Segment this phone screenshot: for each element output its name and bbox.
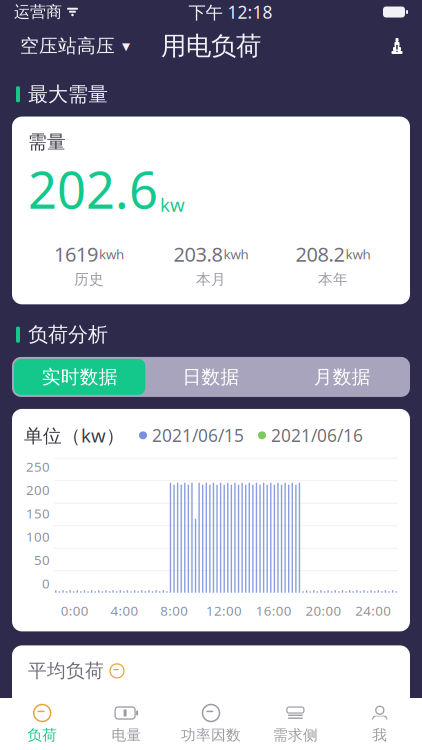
staticText: kw: [117, 721, 142, 746]
staticText: 需求侧: [273, 726, 318, 744]
staticText: ▾: [122, 37, 130, 55]
staticText: 电量: [112, 726, 142, 744]
staticText: 2021/06/15: [152, 424, 244, 447]
staticText: kwh: [223, 245, 248, 263]
staticText: 历史: [74, 270, 104, 288]
staticText: kwh: [99, 245, 124, 263]
staticText: 最大需量: [28, 82, 108, 107]
staticText: 150: [26, 504, 50, 522]
button[interactable]: 电量: [84, 698, 169, 750]
staticText: 1619: [54, 241, 98, 267]
staticText: 24:00: [355, 602, 391, 619]
staticText: 月数据: [314, 365, 371, 388]
staticText: kw: [160, 192, 185, 217]
staticText: 用电负荷: [161, 30, 261, 61]
staticText: 800: [28, 684, 115, 750]
staticText: 本月: [196, 270, 226, 288]
staticText: 我: [372, 726, 387, 744]
staticText: 12:00: [206, 602, 242, 619]
button[interactable]: 空压站高压: [16, 28, 134, 63]
staticText: 负荷分析: [28, 322, 108, 347]
staticText: 16:00: [256, 602, 292, 619]
staticText: 50: [34, 551, 50, 569]
staticText: 203.8: [173, 241, 222, 267]
button[interactable]: 我: [338, 698, 422, 750]
staticText: 实时数据: [42, 365, 118, 388]
button[interactable]: 实时数据: [14, 359, 145, 395]
staticText: 负荷: [27, 726, 57, 744]
button[interactable]: 功率因数: [169, 698, 253, 750]
staticText: 202.6: [28, 155, 158, 223]
staticText: 功率因数: [181, 726, 241, 744]
staticText: 0:00: [61, 602, 89, 619]
staticText: kwh: [345, 245, 370, 263]
staticText: 0: [42, 574, 50, 592]
button[interactable]: 告警: [388, 37, 406, 55]
button[interactable]: 月数据: [277, 359, 408, 395]
button[interactable]: 需求侧: [253, 698, 338, 750]
staticText: 需量: [28, 131, 66, 153]
staticText: 8:00: [160, 602, 188, 619]
staticText: 100: [26, 528, 50, 545]
staticText: 20:00: [305, 602, 341, 619]
staticText: 单位（kw）: [24, 423, 125, 448]
button[interactable]: 日数据: [145, 359, 277, 395]
staticText: 下午 12:18: [188, 0, 272, 23]
staticText: 208.2: [295, 241, 344, 267]
staticText: 200: [26, 481, 50, 499]
staticText: 本年: [318, 270, 348, 288]
staticText: 250: [26, 458, 50, 475]
staticText: 日数据: [182, 365, 239, 388]
staticText: 运营商: [14, 2, 62, 22]
button[interactable]: 负荷: [0, 698, 84, 750]
staticText: 2021/06/16: [271, 424, 363, 447]
staticText: 平均负荷: [28, 659, 104, 682]
staticText: 空压站高压: [20, 34, 115, 57]
staticText: 4:00: [111, 602, 139, 619]
